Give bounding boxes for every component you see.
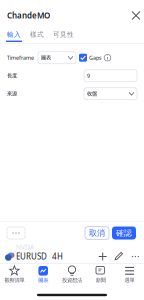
button[interactable]: Draw (107, 252, 124, 261)
staticText: 圖表 (41, 54, 51, 61)
button[interactable]: 樣式 (29, 26, 45, 43)
staticText: ChandeMO (7, 10, 50, 21)
staticText: EURUSD (16, 251, 47, 262)
button[interactable]: More (7, 227, 25, 239)
staticText: 確認 (116, 228, 132, 238)
button[interactable]: 圖表 (38, 52, 76, 64)
staticText: 收盤 (87, 90, 97, 97)
button[interactable]: 觀察清單 (0, 266, 29, 283)
staticText: 輸入 (7, 30, 21, 39)
staticText: 圖表 (38, 277, 48, 283)
staticText: 投資想法 (62, 277, 82, 283)
staticText: 長度 (7, 72, 17, 79)
button[interactable]: More (124, 256, 139, 257)
button[interactable]: 取消 (85, 226, 109, 239)
button[interactable]: Add (99, 252, 107, 260)
button[interactable]: 輸入 (6, 26, 22, 43)
button[interactable]: 可見性 (52, 26, 75, 43)
staticText: 可見性 (53, 30, 74, 39)
staticText: NVDA (16, 243, 34, 251)
button[interactable]: 確認 (112, 226, 136, 239)
button[interactable]: 收盤 (84, 88, 137, 100)
staticText: 4H (52, 251, 63, 262)
staticText: Timeframe (7, 54, 34, 61)
staticText: 選單 (125, 277, 135, 283)
staticText: 來源 (7, 90, 17, 97)
button[interactable]: 圖表 (29, 266, 58, 283)
button[interactable]: 新聞 (86, 266, 115, 283)
staticText: Gaps (89, 54, 102, 61)
staticText: 9 (87, 72, 90, 79)
button[interactable]: Close (129, 8, 143, 22)
button[interactable]: 選單 (115, 266, 144, 283)
button[interactable]: 9 (84, 70, 137, 82)
staticText: 觀察清單 (4, 277, 24, 283)
staticText: 新聞 (96, 277, 106, 283)
button[interactable]: Gaps (76, 54, 111, 62)
staticText: 樣式 (30, 30, 44, 39)
staticText: 取消 (89, 228, 105, 238)
button[interactable]: 投資想法 (58, 266, 86, 283)
